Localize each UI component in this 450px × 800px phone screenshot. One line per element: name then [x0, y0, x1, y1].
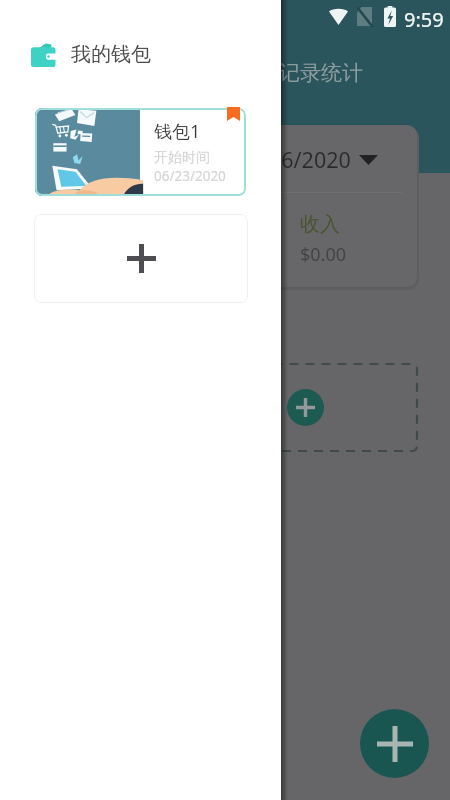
staticText: 06/23/2020 — [154, 167, 226, 185]
staticText: 9:59 — [404, 6, 444, 33]
button[interactable]: Add record — [287, 389, 324, 426]
staticText: 收入 — [300, 212, 340, 237]
staticText: 06/2020 — [269, 145, 351, 174]
staticText: $0.00 — [300, 242, 347, 267]
staticText: 开始时间 — [154, 149, 210, 167]
button[interactable]: 06/2020 — [269, 145, 378, 174]
button[interactable]: Add — [360, 709, 429, 778]
staticText: 钱包1 — [154, 119, 201, 144]
button[interactable]: Add wallet — [34, 214, 248, 303]
staticText: 记录统计 — [279, 60, 363, 86]
button[interactable]: 钱包1 — [35, 108, 246, 196]
staticText: 我的钱包 — [71, 42, 151, 67]
button[interactable]: 06/2020 — [33, 125, 417, 287]
